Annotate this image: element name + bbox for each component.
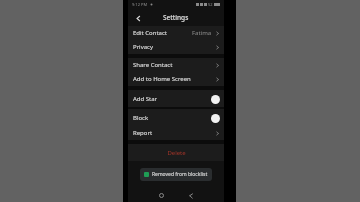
staticText: Settings	[163, 13, 189, 22]
button[interactable]: Edit Contact	[128, 26, 224, 40]
button[interactable]: Share Contact	[128, 58, 224, 72]
button[interactable]: Report	[128, 126, 224, 140]
staticText: Removed from blocklist	[152, 171, 208, 178]
staticText: Block	[133, 114, 149, 122]
staticText: Add to Home Screen	[133, 75, 191, 83]
staticText: Share Contact	[133, 61, 173, 69]
button[interactable]: Delete	[128, 144, 224, 161]
button[interactable]: Privacy	[128, 40, 224, 54]
staticText: Privacy	[133, 43, 154, 51]
staticText: Add Star	[133, 95, 158, 103]
button[interactable]: Add Star toggle	[206, 94, 220, 104]
button[interactable]: Block	[128, 109, 224, 126]
staticText: Delete	[167, 149, 186, 157]
staticText: 9:12 PM	[132, 2, 148, 7]
button[interactable]: Add Star	[128, 90, 224, 107]
staticText: 52	[208, 2, 213, 7]
button[interactable]: Back	[184, 189, 198, 202]
button[interactable]: Add to Home Screen	[128, 72, 224, 86]
staticText: Report	[133, 129, 153, 137]
button[interactable]: Block toggle	[206, 113, 220, 123]
button[interactable]: Home	[154, 189, 168, 202]
staticText: Edit Contact	[133, 29, 168, 37]
button[interactable]: Back	[132, 12, 144, 24]
staticText: Fatima	[192, 29, 212, 37]
